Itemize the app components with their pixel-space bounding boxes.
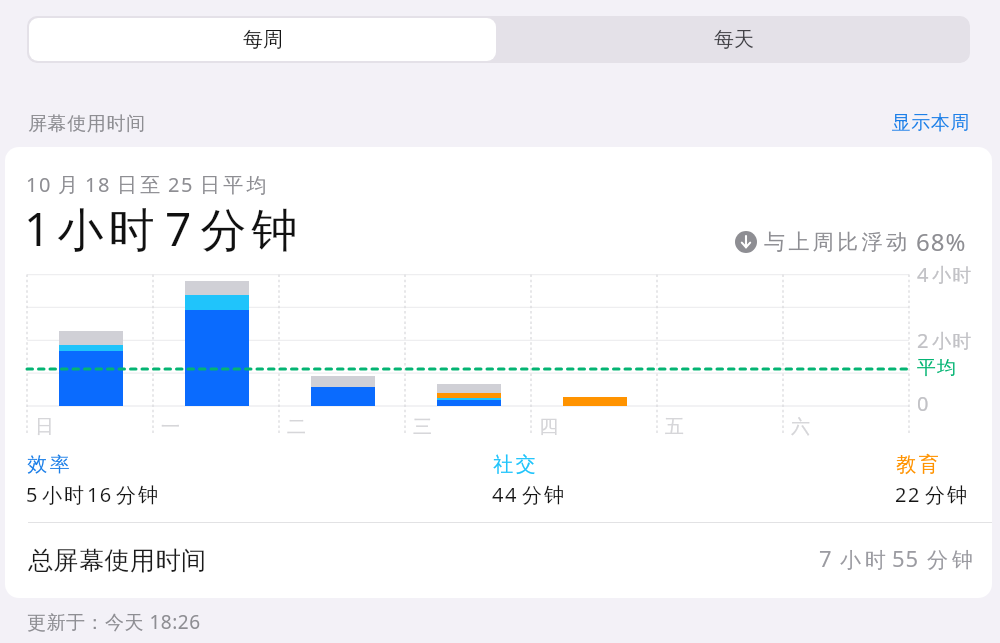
button[interactable]: 显示本周 bbox=[860, 108, 970, 138]
staticText: 分钟 bbox=[521, 483, 565, 508]
staticText: 效率 bbox=[26, 452, 71, 477]
staticText: 日 bbox=[35, 415, 54, 439]
staticText: 三 bbox=[413, 415, 432, 439]
staticText: 社交 bbox=[492, 452, 537, 477]
staticText: 18 bbox=[85, 171, 112, 198]
staticText: 5 bbox=[26, 481, 39, 508]
staticText: 总屏幕使用时间 bbox=[28, 545, 207, 576]
button[interactable]: 总屏幕使用时间 bbox=[5, 523, 992, 598]
staticText: 2 bbox=[917, 327, 929, 354]
staticText: 68% bbox=[916, 225, 967, 251]
staticText: 小时 bbox=[838, 547, 888, 573]
staticText: 小时 bbox=[41, 483, 85, 508]
staticText: 小时 bbox=[932, 330, 973, 354]
staticText: 显示本周 bbox=[860, 111, 970, 135]
staticText: 一 bbox=[161, 415, 180, 439]
staticText: 0 bbox=[917, 390, 929, 417]
staticText: 分钟 bbox=[925, 547, 975, 573]
button[interactable]: 每天 bbox=[498, 16, 970, 63]
staticText: 四 bbox=[539, 415, 558, 439]
staticText: 二 bbox=[287, 415, 306, 439]
staticText: 分钟 bbox=[924, 483, 968, 508]
staticText: 日平均 bbox=[200, 173, 270, 198]
staticText: 7 bbox=[165, 197, 192, 260]
staticText: 教育 bbox=[895, 452, 940, 477]
staticText: 1 bbox=[24, 197, 51, 260]
staticText: 日至 bbox=[117, 173, 164, 198]
staticText: 屏幕使用时间 bbox=[28, 112, 146, 136]
staticText: 五 bbox=[665, 415, 684, 439]
button[interactable]: 每周 bbox=[29, 18, 496, 61]
button[interactable]: 与上周比浮动 68% bbox=[735, 229, 967, 255]
staticText: 22 bbox=[895, 481, 921, 508]
staticText: 7 bbox=[819, 543, 833, 573]
staticText: 分钟 bbox=[115, 483, 159, 508]
staticText: 平均 bbox=[916, 356, 957, 380]
staticText: 10 bbox=[26, 171, 53, 198]
staticText: 与上周比浮动 bbox=[764, 229, 911, 255]
staticText: 分钟 bbox=[198, 202, 300, 260]
staticText: 4 bbox=[917, 261, 929, 288]
staticText: 55 bbox=[892, 543, 920, 573]
staticText: 16 bbox=[87, 481, 113, 508]
staticText: 每天 bbox=[714, 27, 754, 52]
staticText: 小时 bbox=[55, 202, 157, 260]
staticText: 更新于：今天 18:26 bbox=[27, 609, 201, 635]
staticText: 44 bbox=[492, 481, 518, 508]
staticText: 月 bbox=[58, 173, 82, 198]
staticText: 小时 bbox=[932, 264, 973, 288]
staticText: 25 bbox=[168, 171, 195, 198]
staticText: 六 bbox=[791, 415, 810, 439]
staticText: 每周 bbox=[243, 27, 283, 52]
